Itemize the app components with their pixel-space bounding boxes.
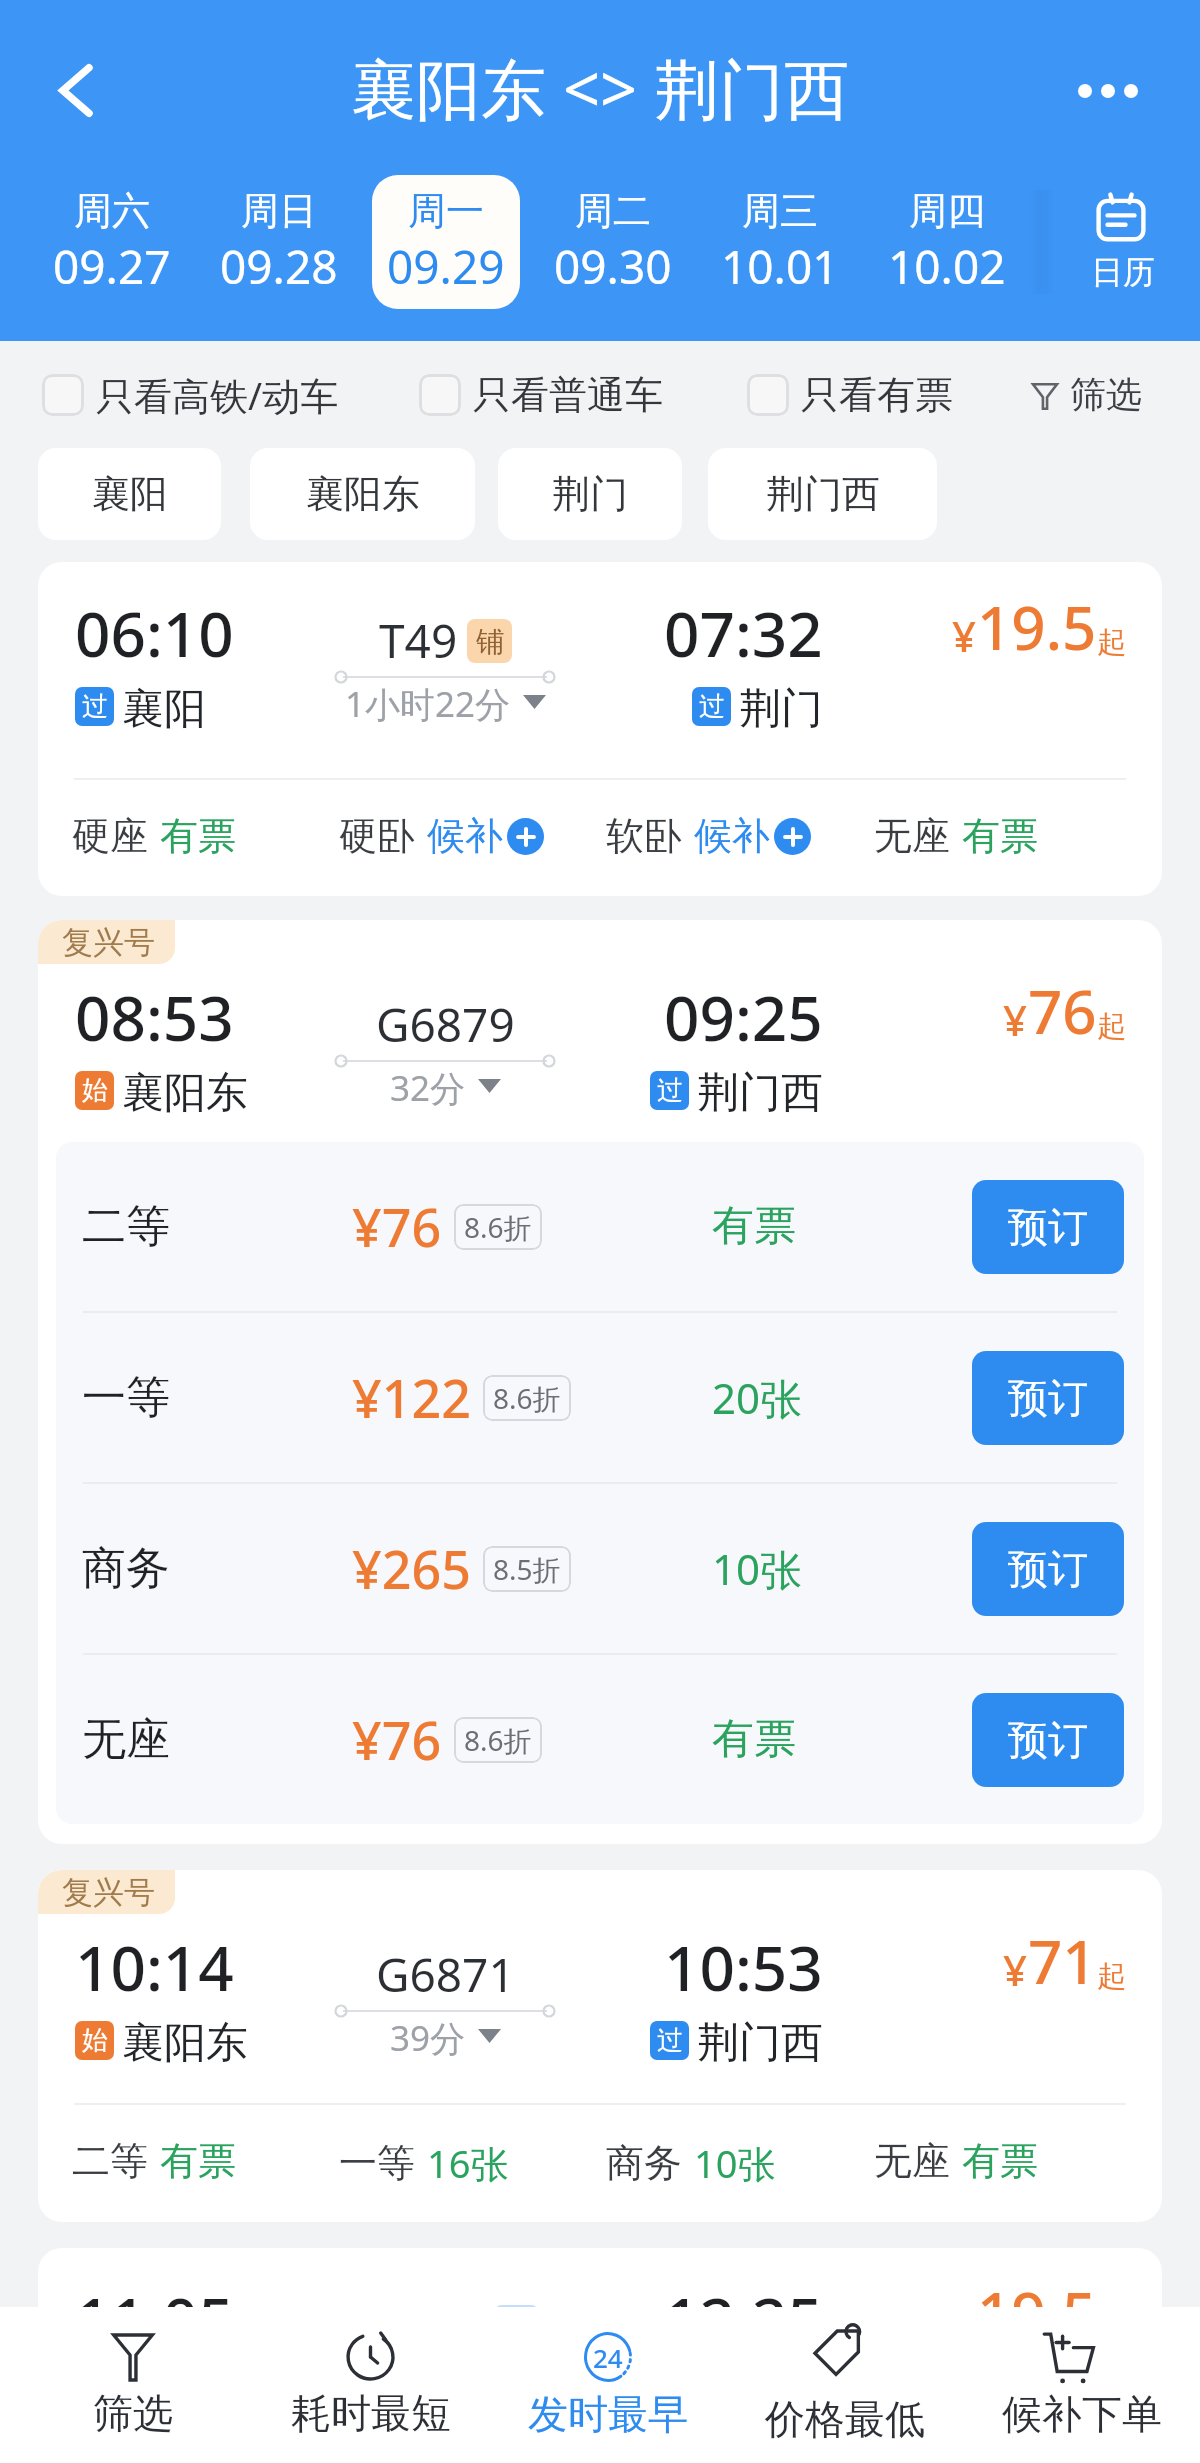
staticText: 8.6折 <box>464 1208 532 1246</box>
staticText: 10张 <box>712 1540 972 1597</box>
button[interactable]: 11:05 <box>38 2248 1162 2463</box>
staticText: 筛选 <box>93 2388 173 2438</box>
staticText: 价格最低 <box>765 2394 925 2444</box>
staticText: 发时最早 <box>528 2389 688 2439</box>
staticText: 无座 <box>82 1712 352 1767</box>
button[interactable]: More options <box>1046 49 1170 133</box>
button[interactable]: 耗时最短 <box>252 2307 489 2463</box>
button[interactable]: 24 <box>489 2307 726 2463</box>
button[interactable]: 预订 <box>972 1180 1124 1274</box>
staticText: 09.27 <box>53 235 171 298</box>
staticText: ¥76 <box>352 1191 442 1262</box>
button[interactable]: 襄阳 <box>38 448 221 540</box>
button[interactable]: 候补下单 <box>963 2307 1200 2463</box>
staticText: 周六 <box>74 187 150 235</box>
staticText: 16张 <box>427 2137 509 2189</box>
button[interactable]: 预订 <box>972 1351 1124 1445</box>
button[interactable]: 荆门 <box>498 448 682 540</box>
staticText: 09.29 <box>387 235 505 298</box>
staticText: 起 <box>1097 1008 1126 1045</box>
staticText: 周三 <box>742 187 818 235</box>
button[interactable]: 筛选 <box>1032 372 1200 417</box>
button[interactable]: 只看高铁/动车 <box>42 369 339 421</box>
button[interactable]: 周二 <box>539 175 687 309</box>
staticText: 只看普通车 <box>473 371 663 419</box>
staticText: 24 <box>593 2340 623 2375</box>
staticText: 日历 <box>1091 252 1155 292</box>
staticText: 06:10 <box>75 591 234 675</box>
staticText: 09.30 <box>554 235 672 298</box>
staticText: ¥122 <box>352 1362 471 1433</box>
staticText: 荆门 <box>552 470 628 518</box>
staticText: 襄阳东 <> 荆门西 <box>351 44 850 133</box>
staticText: 只看有票 <box>801 371 953 419</box>
staticText: 10张 <box>694 2137 776 2189</box>
staticText: 襄阳 <box>92 470 168 518</box>
staticText: 10.02 <box>888 235 1006 298</box>
staticText: 预订 <box>1008 1202 1088 1252</box>
button[interactable]: 荆门西 <box>708 448 937 540</box>
staticText: 8.6折 <box>464 1721 532 1759</box>
staticText: 有票 <box>712 1200 972 1253</box>
staticText: G6879 <box>376 993 515 1056</box>
staticText: 过 <box>657 1074 683 1107</box>
staticText: 始 <box>82 2024 108 2057</box>
button[interactable]: 预订 <box>972 1522 1124 1616</box>
staticText: 08:53 <box>75 975 234 1059</box>
staticText: 10:53 <box>664 1925 823 2009</box>
staticText: 07:32 <box>664 591 823 675</box>
staticText: 预订 <box>1008 1715 1088 1765</box>
staticText: 硬座 <box>72 812 148 860</box>
button[interactable]: 只看有票 <box>747 371 953 419</box>
staticText: 有票 <box>962 812 1038 860</box>
staticText: 一等 <box>82 1370 352 1425</box>
button[interactable]: Calendar <box>1054 174 1200 310</box>
staticText: 39分 <box>390 2014 466 2058</box>
staticText: 20张 <box>712 1369 972 1426</box>
staticText: 软卧 <box>606 812 682 860</box>
staticText: 候补 <box>694 812 770 860</box>
button[interactable]: 周三 <box>706 175 854 309</box>
staticText: 有票 <box>160 812 236 860</box>
staticText: 商务 <box>606 2139 682 2187</box>
button[interactable]: 预订 <box>972 1693 1124 1787</box>
staticText: 候补 <box>427 812 503 860</box>
staticText: 荆门 <box>739 683 823 730</box>
staticText: G6871 <box>376 1943 515 2006</box>
button[interactable]: 襄阳东 <box>250 448 475 540</box>
staticText: 8.5折 <box>493 1550 561 1588</box>
button[interactable]: 周四 <box>873 175 1021 309</box>
button[interactable]: 周六 <box>38 175 186 309</box>
staticText: 始 <box>82 1074 108 1107</box>
staticText: 周四 <box>909 187 985 235</box>
button[interactable]: 价格最低 <box>726 2307 963 2463</box>
staticText: 荆门 <box>739 2369 823 2416</box>
staticText: 有票 <box>962 2137 1038 2185</box>
staticText: 复兴号 <box>62 923 155 962</box>
button[interactable]: 复兴号 <box>38 1870 1162 2222</box>
button[interactable]: 06:10 <box>38 562 1162 896</box>
staticText: 有票 <box>160 2137 236 2185</box>
button[interactable]: 只看普通车 <box>419 371 663 419</box>
button[interactable]: 筛选 <box>14 2307 252 2463</box>
staticText: 襄阳 <box>122 2369 206 2416</box>
staticText: 周一 <box>408 187 484 235</box>
staticText: 商务 <box>82 1541 352 1596</box>
staticText: 无座 <box>874 2137 950 2185</box>
staticText: 周二 <box>575 187 651 235</box>
staticText: 有票 <box>712 1713 972 1766</box>
staticText: 荆门西 <box>697 2017 823 2064</box>
staticText: 19.5 <box>977 586 1097 668</box>
staticText: 无座 <box>874 812 950 860</box>
button[interactable]: Back <box>20 35 130 145</box>
staticText: 周日 <box>241 187 317 235</box>
staticText: 12:25 <box>664 2277 823 2361</box>
button[interactable]: 周一 <box>372 175 520 309</box>
button[interactable]: 周日 <box>205 175 353 309</box>
staticText: 二等 <box>72 2137 148 2185</box>
staticText: 71 <box>1028 1920 1097 2002</box>
staticText: 二等 <box>82 1199 352 1254</box>
button[interactable]: 复兴号 <box>38 920 1162 1844</box>
